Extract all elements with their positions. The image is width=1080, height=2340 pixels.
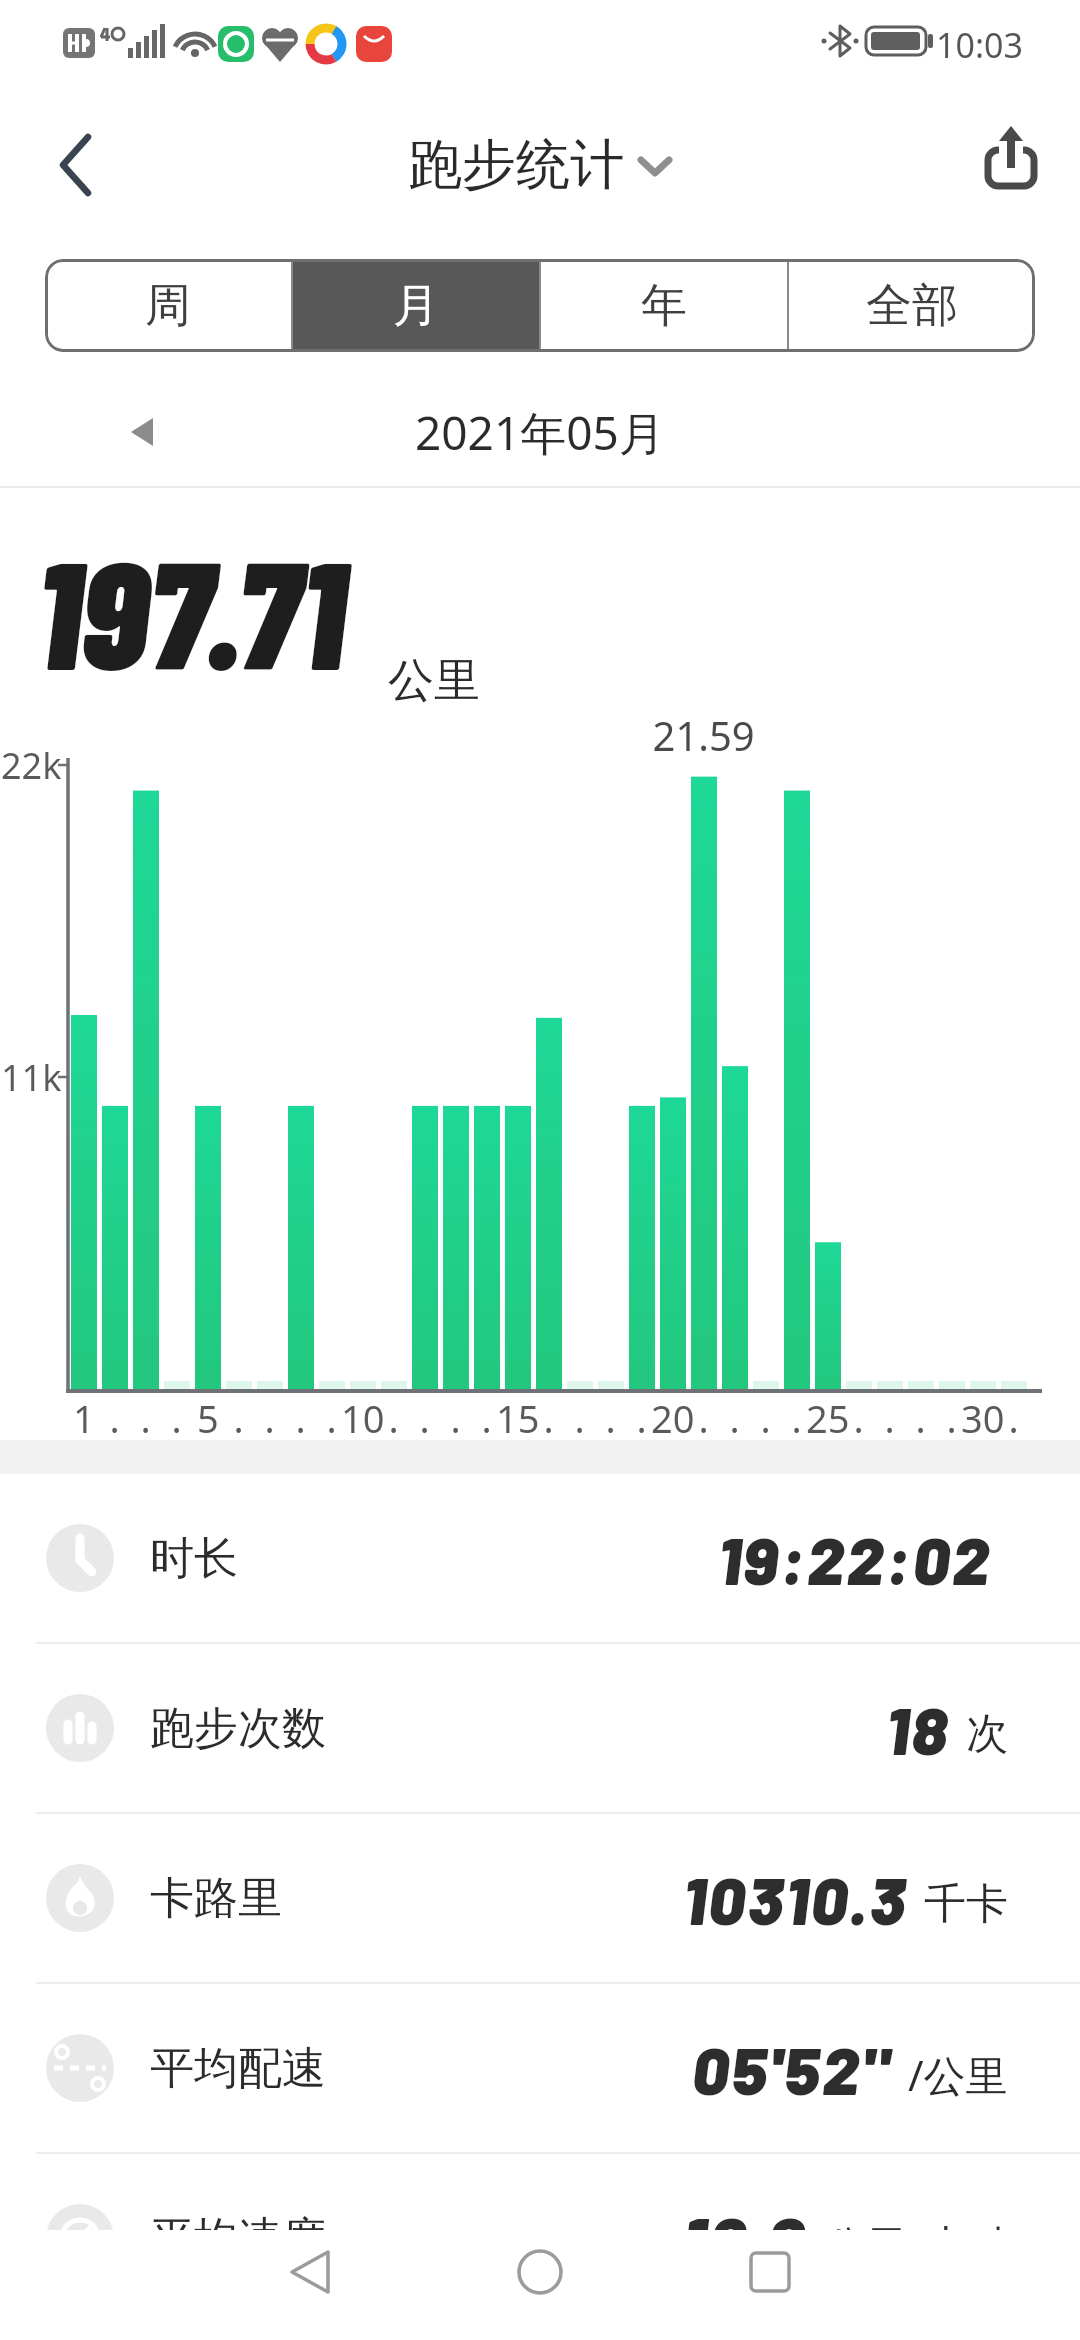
button[interactable]: 平均配速 xyxy=(0,1984,1080,2152)
button[interactable]: 周 xyxy=(45,259,291,352)
staticText: 18 xyxy=(886,1689,950,1768)
button[interactable]: 年 xyxy=(541,259,787,352)
staticText: 年 xyxy=(641,277,687,335)
button[interactable]: 全部 xyxy=(789,259,1035,352)
staticText: 19:22:02 xyxy=(718,1519,992,1598)
staticText: 次 xyxy=(966,1708,1008,1761)
button[interactable] xyxy=(104,396,180,468)
staticText: /公里 xyxy=(908,2046,1008,2103)
button[interactable]: 跑步统计 xyxy=(0,125,1080,205)
button[interactable]: 跑步次数 xyxy=(0,1644,1080,1812)
staticText: 10:03 xyxy=(936,22,1023,68)
staticText: 05'52" xyxy=(692,2029,892,2108)
staticText: 10.2 xyxy=(684,2199,808,2278)
button[interactable] xyxy=(490,2230,590,2314)
button[interactable]: 平均速度 xyxy=(0,2154,1080,2322)
staticText: 197.71 xyxy=(36,518,346,700)
button[interactable]: 时长 xyxy=(0,1474,1080,1642)
staticText: 公里/小时 xyxy=(824,2216,1008,2273)
staticText: 跑步统计 xyxy=(408,131,624,199)
staticText: 跑步次数 xyxy=(150,1701,326,1756)
button[interactable] xyxy=(966,118,1056,208)
button[interactable] xyxy=(260,2230,360,2314)
staticText: 时长 xyxy=(150,1531,238,1586)
staticText: 公里 xyxy=(388,652,480,710)
staticText: 月 xyxy=(393,277,439,335)
staticText: 10310.3 xyxy=(683,1859,908,1938)
staticText: 全部 xyxy=(866,277,958,335)
staticText: 卡路里 xyxy=(150,1871,282,1926)
button[interactable] xyxy=(720,2230,820,2314)
button[interactable]: 卡路里 xyxy=(0,1814,1080,1982)
staticText: 平均配速 xyxy=(150,2041,326,2096)
button[interactable]: 月 xyxy=(293,259,539,352)
staticText: 千卡 xyxy=(924,1878,1008,1931)
staticText: 平均速度 xyxy=(150,2211,326,2266)
staticText: 周 xyxy=(145,277,191,335)
staticText: 2021年05月 xyxy=(415,401,665,464)
button[interactable] xyxy=(40,120,120,210)
